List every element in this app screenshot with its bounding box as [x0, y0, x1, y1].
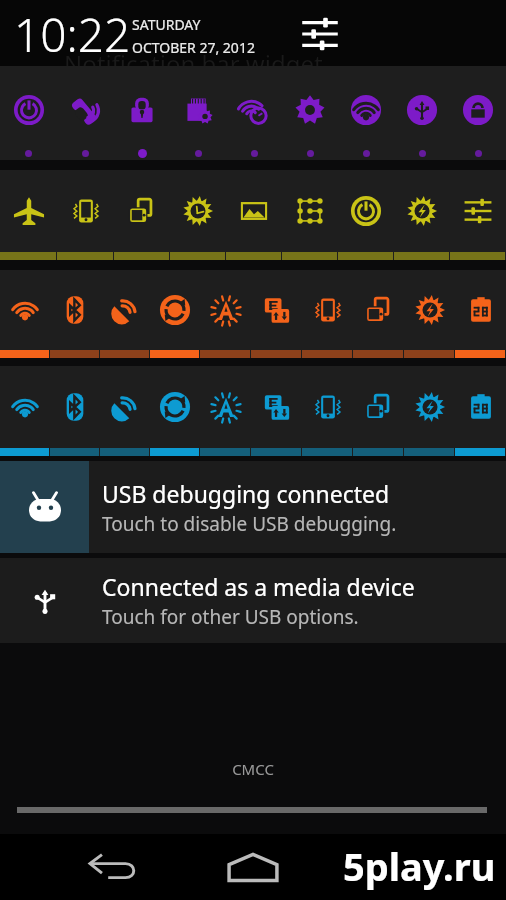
button[interactable]: rotate: [353, 270, 404, 350]
button[interactable]: lock: [114, 66, 170, 147]
staticText: 5play.ru: [343, 840, 496, 892]
button[interactable]: sunflash: [394, 170, 450, 252]
button[interactable]: Back: [0, 834, 225, 900]
button[interactable]: gps: [100, 366, 150, 448]
button[interactable]: simgear: [170, 66, 226, 147]
button[interactable]: callsync: [57, 66, 114, 147]
button[interactable]: sunflash: [404, 366, 455, 448]
button[interactable]: lock_c: [450, 66, 506, 147]
button[interactable]: sunflash: [404, 270, 455, 350]
button[interactable]: wifi_c: [338, 66, 394, 147]
button[interactable]: Quick settings: [297, 11, 343, 57]
button[interactable]: power2: [338, 170, 394, 252]
button[interactable]: autobright: [200, 270, 251, 350]
button[interactable]: USB debugging connected: [0, 461, 506, 553]
staticText: SATURDAY: [132, 15, 201, 34]
staticText: CMCC: [0, 759, 506, 779]
button[interactable]: battery: [455, 366, 506, 448]
button[interactable]: sync: [150, 270, 200, 350]
button[interactable]: rotate: [114, 170, 170, 252]
button[interactable]: bt: [50, 366, 100, 448]
button[interactable]: data: [251, 366, 302, 448]
staticText: 10:22: [14, 3, 131, 66]
button[interactable]: autobright: [200, 366, 251, 448]
button[interactable]: battery: [455, 270, 506, 350]
button[interactable]: bt: [50, 270, 100, 350]
button[interactable]: picture: [226, 170, 282, 252]
button[interactable]: Home: [168, 834, 338, 900]
button[interactable]: plane: [0, 170, 57, 252]
button[interactable]: wifitime: [226, 66, 282, 147]
button[interactable]: grid: [282, 170, 338, 252]
staticText: Touch to disable USB debugging.: [102, 511, 397, 537]
staticText: Notification bar widget: [64, 47, 323, 80]
button[interactable]: sliders: [450, 170, 506, 252]
button[interactable]: Connected as a media device: [0, 558, 506, 643]
button[interactable]: wifi: [0, 366, 50, 448]
staticText: USB debugging connected: [102, 478, 390, 509]
staticText: Touch for other USB options.: [102, 604, 359, 630]
button[interactable]: vibrate: [57, 170, 114, 252]
button[interactable]: gps: [100, 270, 150, 350]
button[interactable]: power: [0, 66, 57, 147]
staticText: OCTOBER 27, 2012: [132, 38, 255, 57]
button[interactable]: vibrate: [302, 366, 353, 448]
button[interactable]: usb_c: [394, 66, 450, 147]
button[interactable]: sync: [150, 366, 200, 448]
button[interactable]: gear: [282, 66, 338, 147]
staticText: Connected as a media device: [102, 571, 415, 602]
button[interactable]: data: [251, 270, 302, 350]
button[interactable]: rotate: [353, 366, 404, 448]
button[interactable]: sunclock: [170, 170, 226, 252]
button[interactable]: wifi: [0, 270, 50, 350]
button[interactable]: vibrate: [302, 270, 353, 350]
